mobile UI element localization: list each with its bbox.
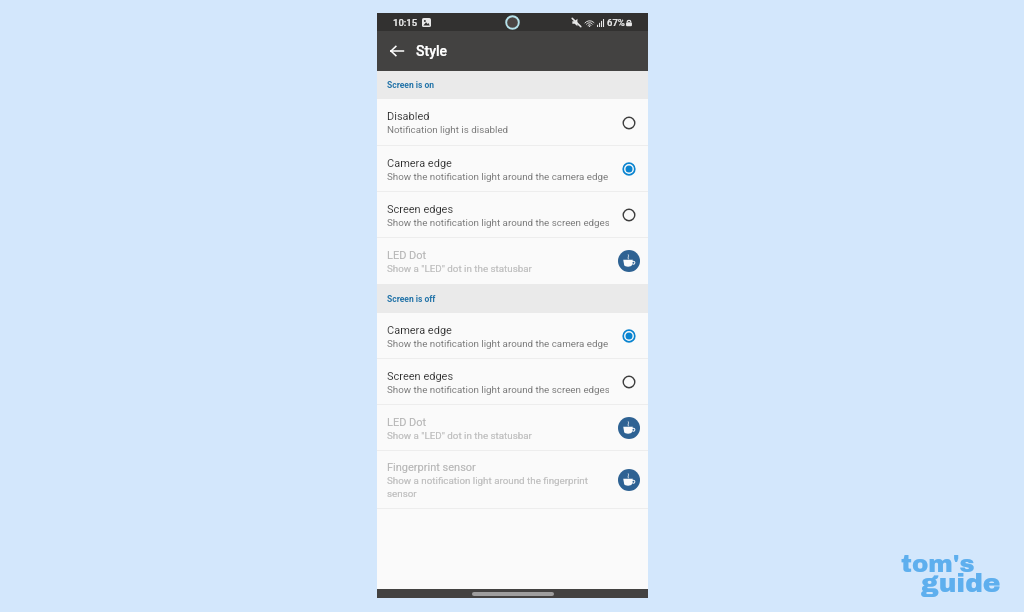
- button[interactable]: Disabled: [377, 99, 648, 146]
- staticText: Fingerprint sensor: [387, 461, 476, 474]
- staticText: 10:15: [393, 17, 418, 28]
- staticText: Show the notification light around the c…: [387, 338, 609, 349]
- button[interactable]: Premium feature: [618, 417, 640, 439]
- staticText: Screen is off: [387, 294, 436, 304]
- button[interactable]: Fingerprint sensor: [377, 451, 648, 509]
- button[interactable]: Screen edges: [377, 359, 648, 405]
- button[interactable]: Home: [472, 592, 554, 596]
- button[interactable]: Camera edge: [377, 146, 648, 192]
- staticText: Screen is on: [387, 80, 435, 90]
- staticText: Camera edge: [387, 324, 452, 337]
- staticText: Camera edge: [387, 157, 452, 170]
- staticText: 67%: [607, 17, 625, 28]
- other: Selected: [622, 162, 636, 176]
- staticText: Notification light is disabled: [387, 124, 509, 135]
- button[interactable]: LED Dot: [377, 405, 648, 451]
- staticText: Disabled: [387, 110, 430, 123]
- staticText: Show a notification light around the fin…: [387, 475, 609, 499]
- staticText: Style: [416, 43, 448, 59]
- staticText: Show a "LED" dot in the statusbar: [387, 430, 532, 441]
- other: Selected: [622, 329, 636, 343]
- button[interactable]: Camera edge: [377, 313, 648, 359]
- other: Not selected: [622, 375, 636, 389]
- other: Not selected: [622, 208, 636, 222]
- button[interactable]: LED Dot: [377, 238, 648, 284]
- staticText: Screen edges: [387, 370, 454, 383]
- staticText: Show the notification light around the s…: [387, 384, 609, 395]
- staticText: LED Dot: [387, 249, 427, 262]
- staticText: Show the notification light around the s…: [387, 217, 609, 228]
- staticText: Show the notification light around the c…: [387, 171, 609, 182]
- other: Not selected: [622, 116, 636, 130]
- button[interactable]: Back: [384, 38, 410, 64]
- button[interactable]: Premium feature: [618, 469, 640, 491]
- staticText: guide: [921, 569, 1001, 598]
- staticText: LED Dot: [387, 416, 427, 429]
- staticText: Show a "LED" dot in the statusbar: [387, 263, 532, 274]
- staticText: Screen edges: [387, 203, 454, 216]
- button[interactable]: Premium feature: [618, 250, 640, 272]
- staticText: tom's: [901, 550, 975, 577]
- button[interactable]: Screen edges: [377, 192, 648, 238]
